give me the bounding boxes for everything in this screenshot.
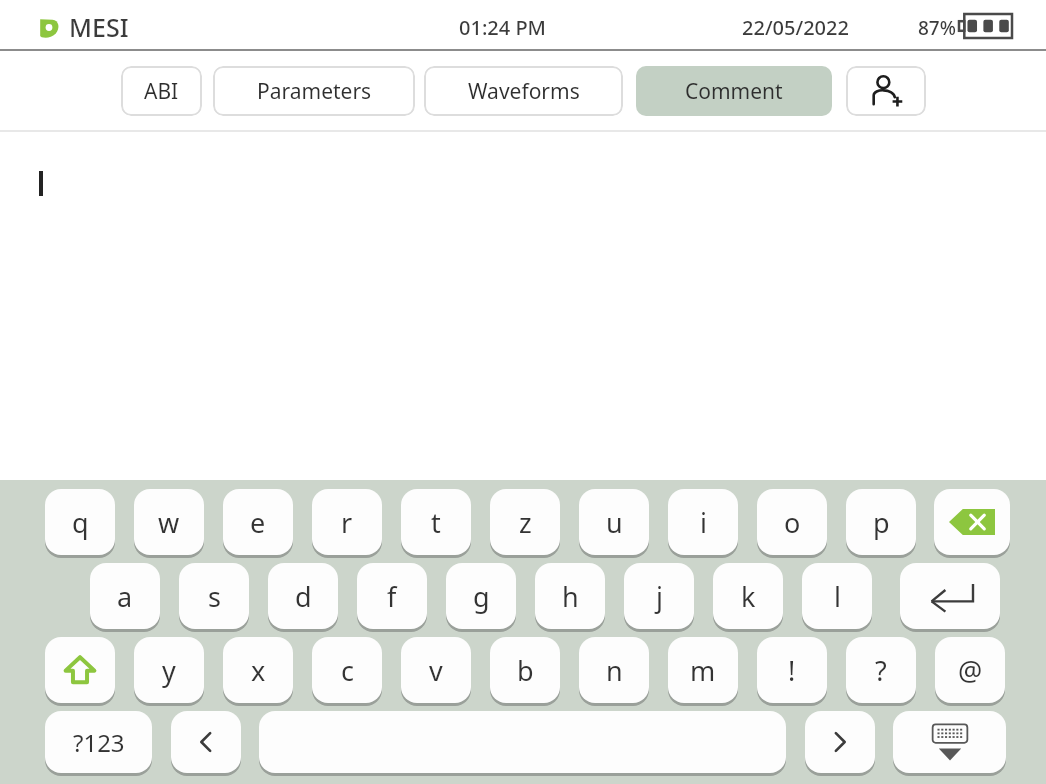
button[interactable]: w	[134, 489, 204, 555]
staticText: l	[834, 578, 841, 615]
staticText: i	[700, 504, 707, 541]
staticText: x	[251, 652, 266, 689]
button[interactable]: x	[223, 637, 293, 703]
button[interactable]: n	[579, 637, 649, 703]
staticText: ?123	[73, 726, 125, 759]
staticText: u	[606, 504, 623, 541]
button[interactable]: f	[357, 563, 427, 629]
button[interactable]: a	[90, 563, 160, 629]
staticText: 87%	[918, 15, 956, 41]
button[interactable]: o	[757, 489, 827, 555]
button[interactable]: Hide keyboard	[893, 711, 1006, 773]
staticText: t	[431, 504, 441, 541]
button[interactable]: Previous	[171, 711, 241, 773]
button[interactable]: q	[45, 489, 115, 555]
staticText: d	[295, 578, 312, 615]
button[interactable]: c	[312, 637, 382, 703]
staticText: q	[72, 504, 89, 541]
staticText: @	[958, 652, 983, 689]
button[interactable]: r	[312, 489, 382, 555]
button[interactable]: v	[401, 637, 471, 703]
staticText: p	[873, 504, 890, 541]
button[interactable]: k	[713, 563, 783, 629]
staticText: k	[741, 578, 756, 615]
staticText: MESI	[69, 10, 129, 44]
staticText: 01:24 PM	[459, 14, 546, 41]
staticText: Waveforms	[468, 77, 580, 106]
staticText: f	[387, 578, 397, 615]
button[interactable]: s	[179, 563, 249, 629]
button[interactable]: g	[446, 563, 516, 629]
staticText: z	[519, 504, 532, 541]
button[interactable]: Space	[259, 711, 786, 773]
button[interactable]: !	[757, 637, 827, 703]
button[interactable]: @	[935, 637, 1005, 703]
button[interactable]: y	[134, 637, 204, 703]
button[interactable]: u	[579, 489, 649, 555]
staticText: y	[162, 652, 176, 689]
button[interactable]: z	[490, 489, 560, 555]
button[interactable]: ?	[846, 637, 916, 703]
button[interactable]: d	[268, 563, 338, 629]
button[interactable]: Waveforms	[424, 66, 623, 116]
button[interactable]: i	[668, 489, 738, 555]
staticText: c	[341, 652, 354, 689]
staticText: r	[341, 504, 353, 541]
staticText: b	[517, 652, 534, 689]
button[interactable]: Backspace	[934, 489, 1010, 555]
staticText: o	[784, 504, 801, 541]
staticText: Parameters	[257, 77, 372, 106]
staticText: v	[429, 652, 443, 689]
staticText: a	[117, 578, 133, 615]
button[interactable]: Shift	[45, 637, 115, 703]
button[interactable]: Add patient	[846, 66, 926, 116]
button[interactable]: Enter	[900, 563, 1000, 629]
staticText: w	[158, 504, 180, 541]
staticText: m	[690, 652, 716, 689]
button[interactable]: b	[490, 637, 560, 703]
button[interactable]: Parameters	[213, 66, 415, 116]
button[interactable]: h	[535, 563, 605, 629]
button[interactable]: m	[668, 637, 738, 703]
button[interactable]: t	[401, 489, 471, 555]
button[interactable]: l	[802, 563, 872, 629]
button[interactable]: p	[846, 489, 916, 555]
staticText: g	[473, 578, 490, 615]
staticText: n	[606, 652, 623, 689]
staticText: j	[656, 578, 663, 615]
button[interactable]: e	[223, 489, 293, 555]
staticText: !	[788, 652, 796, 689]
staticText: e	[250, 504, 266, 541]
staticText: ABI	[144, 77, 179, 106]
button[interactable]: ABI	[121, 66, 202, 116]
button[interactable]: Comment	[636, 66, 832, 116]
staticText: ?	[875, 652, 887, 689]
button[interactable]: ?123	[45, 711, 152, 773]
staticText: Comment	[685, 77, 783, 106]
staticText: 22/05/2022	[742, 14, 849, 41]
staticText: s	[208, 578, 221, 615]
staticText: h	[562, 578, 579, 615]
button[interactable]: Next	[805, 711, 875, 773]
button[interactable]: j	[624, 563, 694, 629]
